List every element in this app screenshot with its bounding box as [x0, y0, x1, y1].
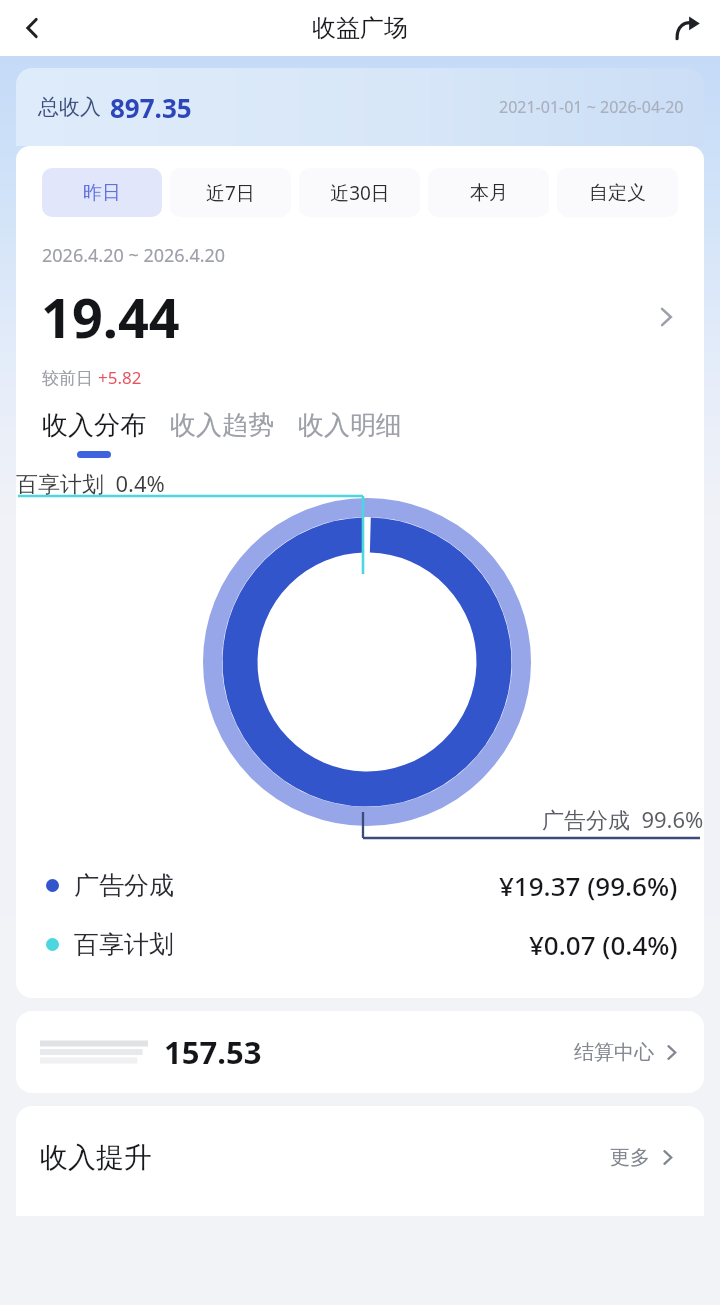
button[interactable]: 近7日: [170, 168, 291, 217]
staticText: 百享计划 0.4%: [16, 468, 165, 498]
button[interactable]: 收入分布: [42, 409, 170, 458]
staticText: ¥0.07 (0.4%): [529, 927, 678, 962]
staticText: 收入明细: [298, 409, 402, 442]
staticText: 本月: [470, 181, 508, 205]
staticText: 897.35: [110, 90, 192, 125]
button[interactable]: Income detail: [648, 299, 684, 335]
staticText: 自定义: [589, 181, 646, 205]
staticText: 收入分布: [42, 409, 146, 442]
staticText: 广告分成: [74, 870, 174, 901]
staticText: ¥19.37 (99.6%): [499, 868, 678, 903]
button[interactable]: 昨日: [42, 168, 162, 217]
staticText: +5.82: [98, 366, 142, 389]
button[interactable]: 广告分成: [46, 868, 678, 903]
staticText: 昨日: [83, 181, 121, 205]
staticText: 19.44: [41, 280, 180, 354]
staticText: 近30日: [330, 180, 390, 206]
button[interactable]: Back: [6, 2, 58, 54]
button[interactable]: 收入明细: [298, 409, 402, 458]
staticText: 近7日: [206, 180, 255, 206]
staticText: 收入趋势: [170, 409, 274, 442]
staticText: 更多: [610, 1145, 650, 1170]
button[interactable]: 157.53: [16, 1011, 704, 1093]
button[interactable]: 近30日: [299, 168, 420, 217]
staticText: 结算中心: [574, 1040, 654, 1065]
button[interactable]: 更多: [606, 1141, 680, 1174]
staticText: 2026.4.20 ~ 2026.4.20: [42, 243, 226, 268]
staticText: 2021-01-01 ~ 2026-04-20: [499, 96, 684, 118]
staticText: 广告分成 99.6%: [542, 804, 704, 834]
button[interactable]: Share: [662, 2, 714, 54]
button[interactable]: 收入趋势: [170, 409, 298, 458]
staticText: 总收入: [38, 94, 101, 120]
staticText: 收入提升: [40, 1140, 152, 1175]
staticText: 157.53: [164, 1031, 262, 1073]
button[interactable]: 自定义: [557, 168, 678, 217]
staticText: 收益广场: [312, 13, 408, 43]
button[interactable]: 百享计划: [46, 927, 678, 962]
staticText: 较前日: [42, 366, 98, 389]
staticText: 百享计划: [74, 929, 174, 960]
button[interactable]: 本月: [428, 168, 549, 217]
